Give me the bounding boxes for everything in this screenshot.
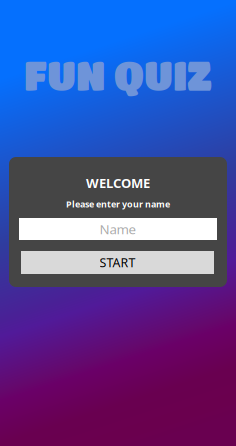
staticText: Name	[99, 220, 136, 238]
button[interactable]: START	[21, 251, 214, 274]
staticText: Please enter your name	[66, 198, 170, 210]
staticText: START	[99, 254, 135, 271]
staticText: FUN QUIZ	[24, 52, 212, 98]
button[interactable]: Name	[19, 218, 217, 240]
staticText: WELCOME	[86, 174, 150, 192]
